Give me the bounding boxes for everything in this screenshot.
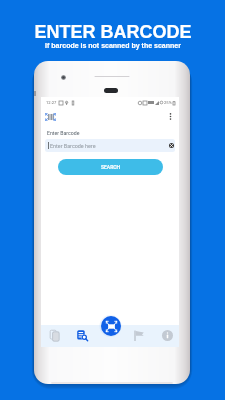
button[interactable]: Search documents — [71, 324, 93, 346]
button[interactable]: Scan barcode — [99, 315, 122, 337]
button[interactable]: Copies — [43, 324, 65, 346]
button[interactable]: Flag — [128, 324, 150, 346]
staticText: 12:27 — [46, 100, 57, 105]
staticText: Enter Barcode here — [50, 143, 96, 149]
staticText: SEARCH — [101, 164, 121, 170]
button[interactable]: Scan barcode — [44, 110, 57, 123]
staticText: ENTER BARCODE — [34, 22, 192, 42]
button[interactable]: Info — [156, 324, 178, 346]
button[interactable]: More options — [165, 111, 176, 122]
staticText: 25% — [164, 100, 172, 105]
button[interactable]: SEARCH — [58, 159, 163, 175]
staticText: Enter Barcode — [47, 130, 80, 136]
staticText: If barcode is not scanned by the scanner — [45, 42, 181, 50]
button[interactable]: Enter Barcode here — [45, 139, 175, 152]
